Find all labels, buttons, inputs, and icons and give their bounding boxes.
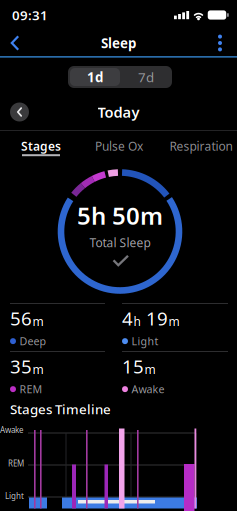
button[interactable] — [10, 102, 29, 121]
staticText: 09:31 — [12, 6, 48, 24]
staticText: 7d — [138, 68, 154, 86]
staticText: m — [32, 361, 43, 377]
staticText: 56 — [10, 306, 32, 331]
staticText: Awake — [0, 425, 24, 435]
staticText: m — [144, 361, 155, 377]
staticText: Sleep — [101, 34, 136, 52]
staticText: 4 — [122, 306, 133, 331]
staticText: REM — [8, 458, 24, 469]
staticText: 1d — [87, 68, 103, 86]
staticText: REM — [19, 382, 42, 396]
staticText: Stages Timeline — [10, 400, 111, 418]
staticText: 15 — [122, 354, 144, 379]
staticText: Respiration — [169, 138, 232, 154]
staticText: Total Sleep — [89, 234, 150, 250]
staticText: h — [133, 313, 140, 329]
staticText: Light — [131, 334, 158, 348]
button[interactable] — [206, 29, 234, 57]
staticText: Pulse Ox — [95, 138, 143, 154]
staticText: Stages — [21, 138, 61, 154]
button[interactable]: 1d — [70, 68, 120, 86]
button[interactable]: Pulse Ox — [92, 135, 146, 157]
staticText: Awake — [131, 382, 164, 396]
button[interactable]: Respiration — [164, 135, 237, 157]
button[interactable] — [0, 28, 30, 58]
staticText: Light — [5, 491, 24, 501]
staticText: m — [32, 313, 43, 329]
button[interactable]: 7d — [122, 68, 170, 86]
staticText: 5h 50m — [77, 200, 163, 231]
button[interactable]: Stages — [17, 135, 65, 157]
staticText: 19 — [141, 306, 168, 331]
staticText: Deep — [19, 334, 46, 348]
staticText: Today — [97, 102, 139, 122]
staticText: 35 — [10, 354, 32, 379]
staticText: m — [168, 313, 179, 329]
